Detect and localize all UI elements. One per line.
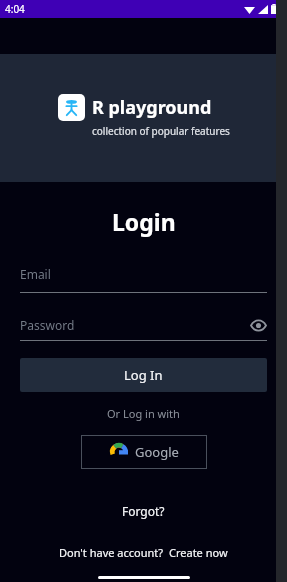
staticText: Login (112, 206, 176, 237)
staticText: Log In (124, 366, 163, 384)
button[interactable]: Google (81, 435, 207, 469)
staticText: collection of popular features (92, 124, 230, 138)
button[interactable]: Forgot? (116, 500, 171, 522)
staticText: Don't have account? (59, 545, 164, 560)
button[interactable]: Password (20, 316, 267, 341)
staticText: Forgot? (122, 503, 165, 519)
button[interactable]: Show password (249, 316, 267, 334)
staticText: Email (20, 266, 51, 282)
staticText: Password (20, 317, 75, 333)
button[interactable]: Log In (20, 358, 267, 392)
button[interactable]: Create now (169, 545, 228, 560)
staticText: R playground (92, 95, 212, 120)
button[interactable]: Email (20, 266, 267, 293)
staticText: 4:04 (5, 2, 25, 16)
staticText: Or Log in with (107, 406, 180, 421)
staticText: Create now (169, 545, 228, 560)
staticText: Google (135, 443, 179, 461)
